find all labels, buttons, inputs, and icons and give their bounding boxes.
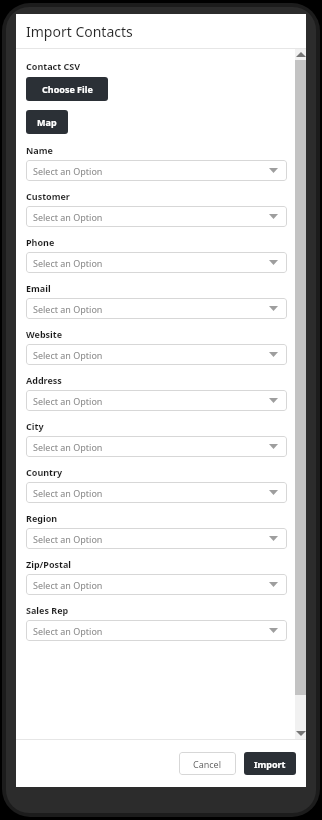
staticText: Select an Option: [33, 579, 103, 591]
button[interactable]: Select an Option: [26, 620, 287, 641]
staticText: Address: [26, 374, 62, 386]
button[interactable]: Select an Option: [26, 344, 287, 365]
staticText: Region: [26, 512, 58, 524]
button[interactable]: Scroll up: [295, 49, 306, 60]
button[interactable]: Choose File: [26, 77, 108, 101]
staticText: Website: [26, 328, 63, 340]
staticText: Phone: [26, 236, 55, 248]
button[interactable]: Select an Option: [26, 390, 287, 411]
staticText: City: [26, 420, 44, 432]
staticText: Select an Option: [33, 349, 103, 361]
staticText: Cancel: [193, 758, 222, 770]
staticText: Import: [254, 758, 286, 770]
button[interactable]: Select an Option: [26, 482, 287, 503]
button[interactable]: Select an Option: [26, 298, 287, 319]
button[interactable]: Scroll down: [295, 728, 306, 739]
staticText: Select an Option: [33, 395, 103, 407]
staticText: Select an Option: [33, 625, 103, 637]
button[interactable]: Select an Option: [26, 574, 287, 595]
button[interactable]: Cancel: [179, 752, 236, 775]
button[interactable]: Select an Option: [26, 436, 287, 457]
staticText: Email: [26, 282, 51, 294]
button[interactable]: Import: [244, 752, 296, 775]
staticText: Select an Option: [33, 441, 103, 453]
staticText: Select an Option: [33, 165, 103, 177]
staticText: Map: [37, 116, 57, 128]
button[interactable]: Map: [26, 110, 68, 134]
button[interactable]: Select an Option: [26, 206, 287, 227]
staticText: Country: [26, 466, 63, 478]
staticText: Choose File: [42, 83, 93, 95]
button[interactable]: Select an Option: [26, 252, 287, 273]
button[interactable]: Select an Option: [26, 160, 287, 181]
staticText: Select an Option: [33, 487, 103, 499]
staticText: Import Contacts: [26, 22, 133, 41]
staticText: Zip/Postal: [26, 558, 72, 570]
staticText: Select an Option: [33, 211, 103, 223]
staticText: Select an Option: [33, 533, 103, 545]
staticText: Select an Option: [33, 303, 103, 315]
staticText: Sales Rep: [26, 604, 69, 616]
staticText: Customer: [26, 190, 70, 202]
staticText: Contact CSV: [26, 60, 81, 72]
staticText: Name: [26, 144, 53, 156]
staticText: Select an Option: [33, 257, 103, 269]
button[interactable]: Select an Option: [26, 528, 287, 549]
